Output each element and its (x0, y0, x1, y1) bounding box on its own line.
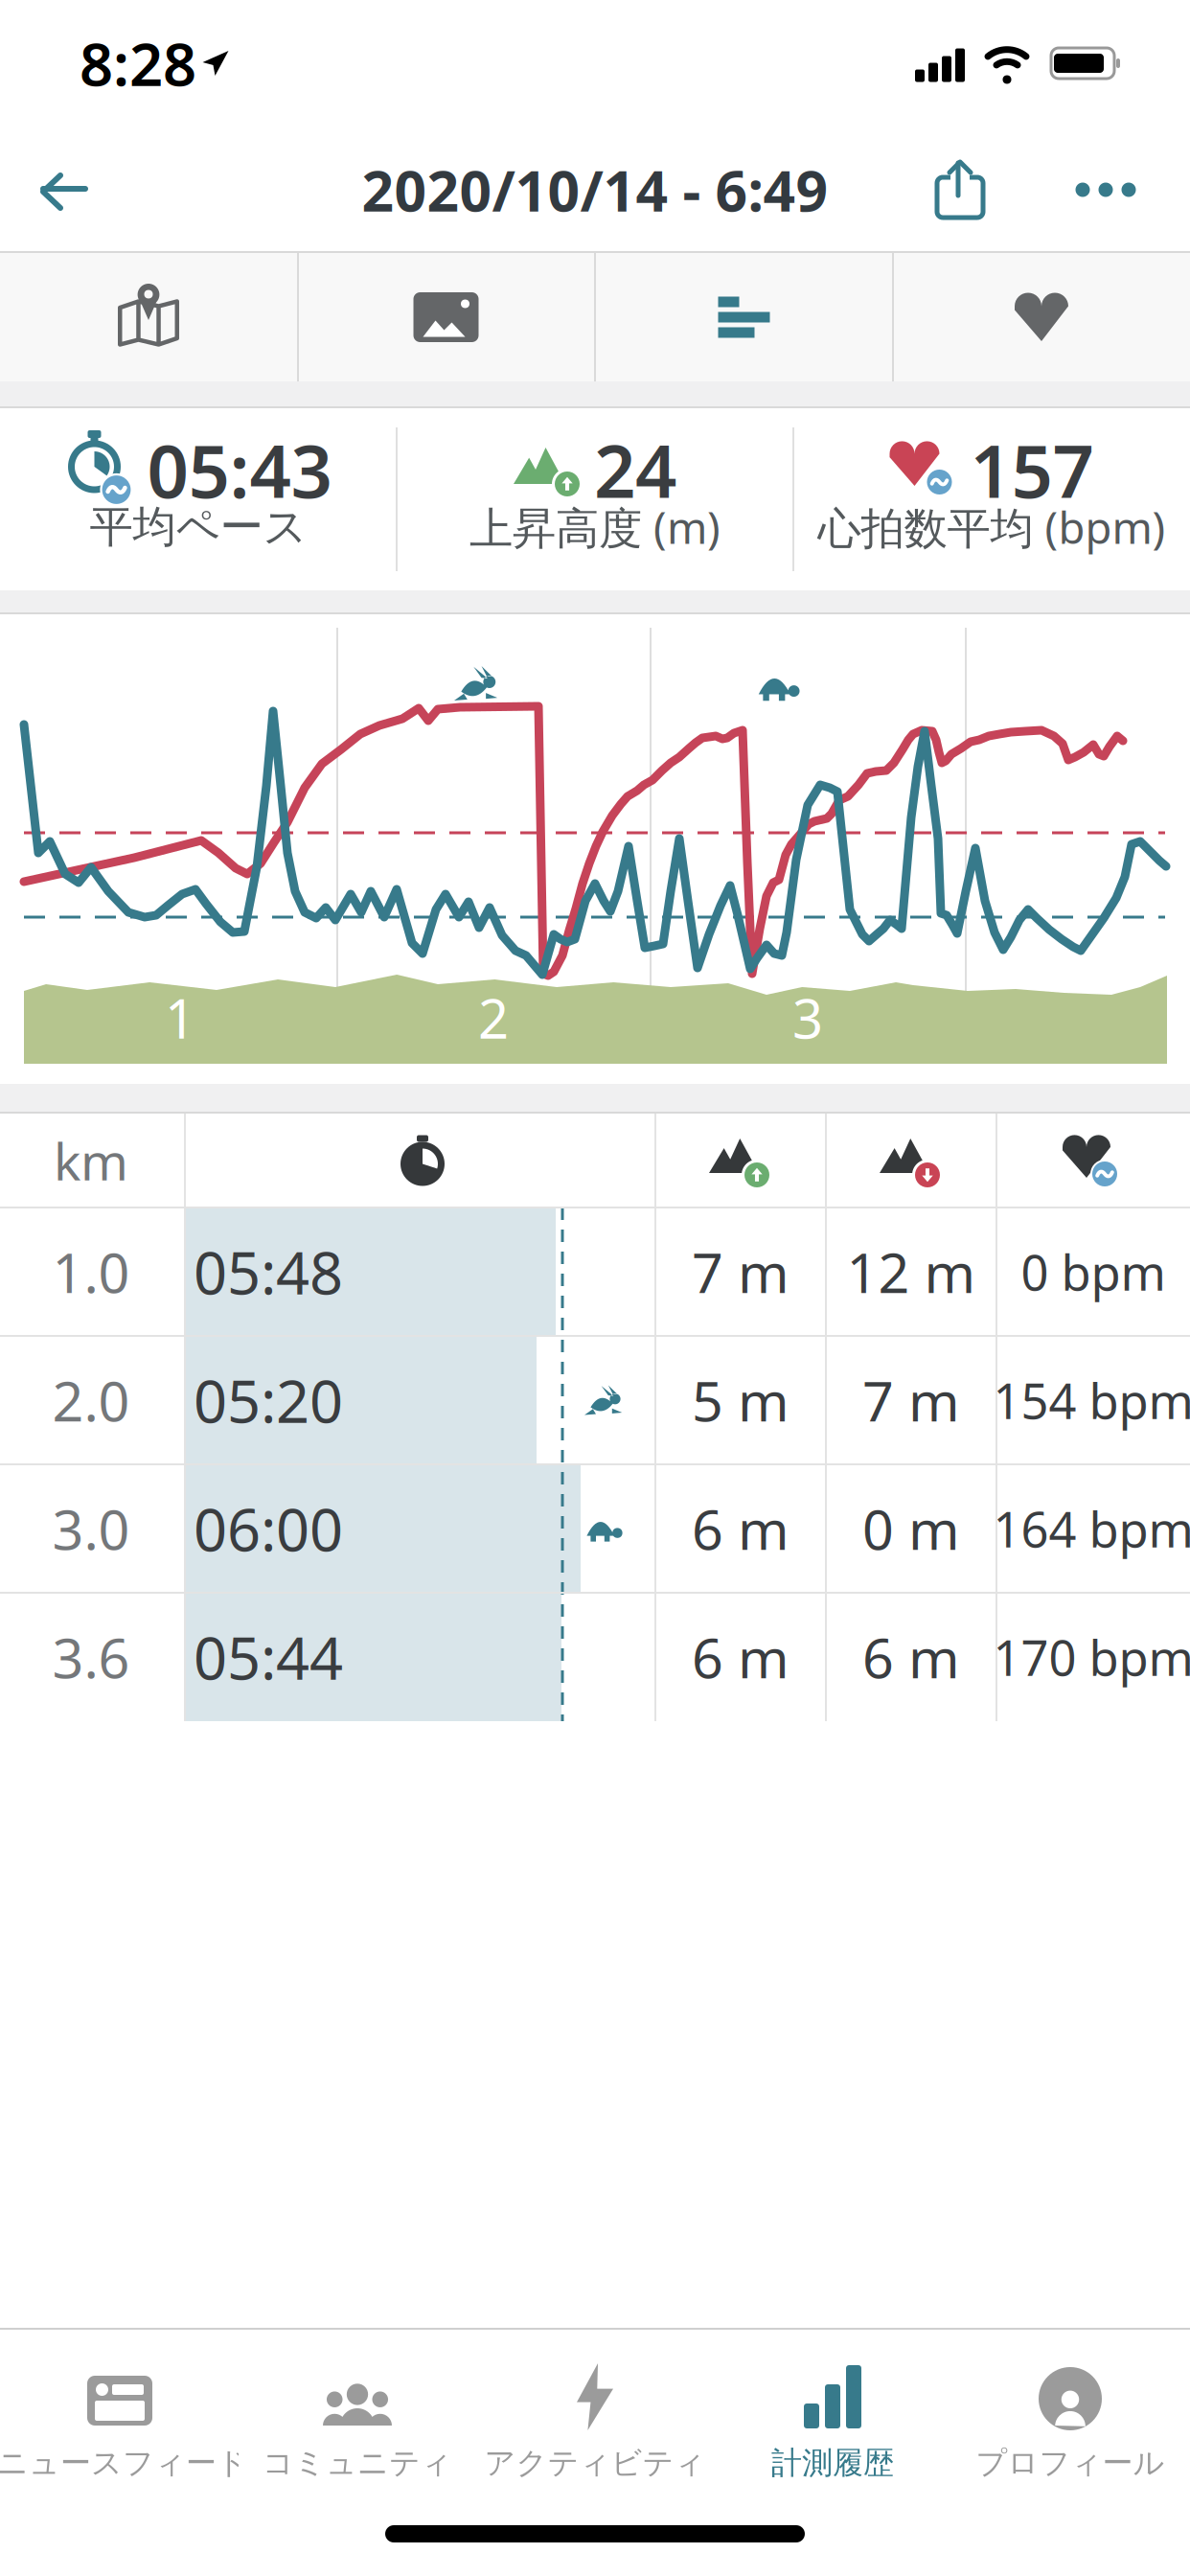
button[interactable]: Stats (595, 253, 893, 381)
staticText: 05:20 (194, 1361, 343, 1439)
staticText: 2.0 (52, 1364, 130, 1437)
button[interactable]: Back (27, 159, 115, 224)
staticText: 6 m (692, 1620, 790, 1693)
button[interactable]: Favorite (893, 253, 1190, 381)
staticText: 0 m (862, 1492, 960, 1565)
staticText: 0 bpm (1021, 1240, 1166, 1304)
staticText: アクティビティ (484, 2444, 706, 2482)
staticText: 7 m (862, 1364, 960, 1437)
staticText: 05:48 (194, 1233, 343, 1311)
button[interactable]: Share (935, 161, 985, 220)
staticText: 6 m (692, 1492, 790, 1565)
staticText: 05:43 (147, 421, 332, 518)
staticText: 上昇高度 (m) (469, 498, 721, 556)
staticText: コミュニティ (263, 2444, 452, 2482)
staticText: 平均ペース (90, 500, 307, 554)
staticText: km (54, 1127, 128, 1194)
staticText: 2020/10/14 - 6:49 (362, 152, 828, 227)
staticText: 170 bpm (993, 1625, 1190, 1689)
staticText: 05:44 (194, 1618, 343, 1696)
button[interactable]: More (1076, 183, 1136, 197)
staticText: 157 (970, 421, 1094, 518)
staticText: 心拍数平均 (bpm) (818, 498, 1166, 556)
staticText: 計測履歴 (771, 2444, 894, 2482)
staticText: ニュースフィード (0, 2444, 248, 2482)
staticText: 1.0 (52, 1235, 130, 1308)
button[interactable]: 計測履歴 (714, 2337, 951, 2500)
button[interactable]: アクティビティ (476, 2337, 714, 2500)
staticText: 12 m (847, 1235, 976, 1308)
button[interactable]: ニュースフィード (1, 2337, 239, 2500)
staticText: プロフィール (976, 2444, 1165, 2482)
staticText: 2 (478, 982, 509, 1053)
staticText: 1 (165, 982, 195, 1053)
staticText: 8:28 (80, 24, 196, 102)
staticText: 06:00 (194, 1490, 343, 1568)
staticText: 164 bpm (993, 1496, 1190, 1561)
button[interactable]: コミュニティ (239, 2337, 476, 2500)
staticText: 6 m (862, 1620, 960, 1693)
staticText: 3 (792, 982, 823, 1053)
staticText: 7 m (692, 1235, 790, 1308)
button[interactable]: Map (0, 253, 297, 381)
staticText: 3.6 (52, 1620, 130, 1693)
staticText: 3.0 (52, 1492, 130, 1565)
staticText: 154 bpm (993, 1368, 1190, 1432)
staticText: 5 m (692, 1364, 790, 1437)
button[interactable]: Photos (297, 253, 595, 381)
button[interactable]: プロフィール (951, 2337, 1189, 2500)
staticText: 24 (594, 421, 676, 518)
